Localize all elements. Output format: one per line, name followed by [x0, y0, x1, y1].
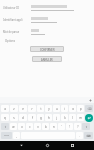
button[interactable]: j	[53, 114, 60, 121]
button[interactable]: p	[77, 105, 84, 112]
button[interactable]: y	[45, 105, 52, 112]
staticText: Options	[5, 39, 15, 43]
staticText: Mot de passe	[3, 30, 20, 34]
staticText: n	[53, 125, 55, 129]
button[interactable]: s	[10, 114, 18, 121]
staticText: p	[80, 107, 82, 111]
button[interactable]: !	[66, 123, 73, 130]
button[interactable]: d	[19, 114, 27, 121]
staticText: ⇧	[85, 125, 88, 128]
staticText: i	[64, 107, 65, 111]
button[interactable]: e	[19, 105, 27, 112]
button[interactable]: t	[37, 105, 44, 112]
button[interactable]: l	[69, 114, 76, 121]
staticText: ⇧	[4, 125, 7, 128]
button[interactable]: m	[77, 114, 84, 121]
button[interactable]: w	[10, 123, 17, 130]
button[interactable]: Applications récentes	[68, 141, 77, 150]
button[interactable]: Majuscule	[1, 123, 9, 130]
staticText: ⌫	[87, 107, 92, 110]
button[interactable]: Clavier	[84, 132, 93, 139]
staticText: !	[69, 125, 70, 129]
button[interactable]: Effacer	[85, 105, 93, 112]
staticText: w	[12, 125, 15, 129]
staticText: r	[31, 107, 33, 111]
staticText: f	[32, 116, 33, 120]
staticText: a	[4, 107, 6, 111]
button[interactable]: ,	[13, 132, 20, 139]
button[interactable]: x	[18, 123, 25, 130]
button[interactable]: ANNULER	[32, 56, 62, 62]
staticText: ,	[16, 134, 17, 138]
staticText: u	[56, 107, 58, 111]
button[interactable]: z	[10, 105, 18, 112]
button[interactable]: n	[50, 123, 57, 130]
button[interactable]	[31, 5, 74, 11]
staticText: j	[56, 116, 57, 120]
staticText: q	[4, 116, 6, 120]
staticText: o	[72, 107, 74, 111]
staticText: ANNULER	[41, 58, 53, 61]
other: Plus	[89, 99, 92, 102]
button[interactable]: ?123	[1, 132, 12, 139]
staticText: h	[48, 116, 50, 120]
staticText: c	[29, 125, 31, 129]
staticText: m	[79, 116, 82, 120]
button[interactable]: a	[1, 105, 9, 112]
button[interactable]: q	[1, 114, 9, 121]
staticText: v	[37, 125, 39, 129]
staticText: ⌨	[86, 134, 91, 137]
button[interactable]: f	[28, 114, 36, 121]
staticText: CONFIRMER	[40, 48, 55, 51]
staticText: z	[13, 107, 15, 111]
staticText: .	[79, 134, 80, 138]
button[interactable]: v	[34, 123, 41, 130]
button[interactable]: Majuscule droite	[82, 123, 90, 130]
staticText: e	[22, 107, 24, 111]
staticText: ?123	[4, 134, 9, 137]
button[interactable]: g	[37, 114, 44, 121]
staticText: s	[13, 116, 15, 120]
button[interactable]: Retour	[17, 141, 26, 150]
staticText: Utilisateur ID	[3, 6, 20, 10]
button[interactable]: '	[58, 123, 65, 130]
button[interactable]: Accueil	[43, 141, 52, 150]
button[interactable]: i	[61, 105, 68, 112]
button[interactable]: b	[42, 123, 49, 130]
button[interactable]: c	[26, 123, 33, 130]
button[interactable]: u	[53, 105, 60, 112]
button[interactable]: r	[28, 105, 36, 112]
button[interactable]: h	[45, 114, 52, 121]
button[interactable]: o	[69, 105, 76, 112]
staticText: Identifiant appli	[3, 18, 23, 22]
staticText: b	[45, 125, 47, 129]
staticText: ?	[77, 125, 79, 129]
staticText: d	[22, 116, 24, 120]
staticText: x	[21, 125, 23, 129]
staticText: '	[61, 125, 62, 129]
staticText: y	[48, 107, 50, 111]
button[interactable]: CONFIRMER	[30, 46, 64, 52]
staticText: l	[72, 116, 73, 120]
button[interactable]: ?	[74, 123, 81, 130]
staticText: k	[64, 116, 66, 120]
staticText: t	[40, 107, 42, 111]
button[interactable]: Entrée	[85, 114, 93, 122]
button[interactable]: Plus	[0, 97, 94, 103]
button[interactable]	[31, 29, 45, 35]
button[interactable]	[31, 17, 57, 23]
staticText: g	[40, 116, 42, 120]
button[interactable]: k	[61, 114, 68, 121]
